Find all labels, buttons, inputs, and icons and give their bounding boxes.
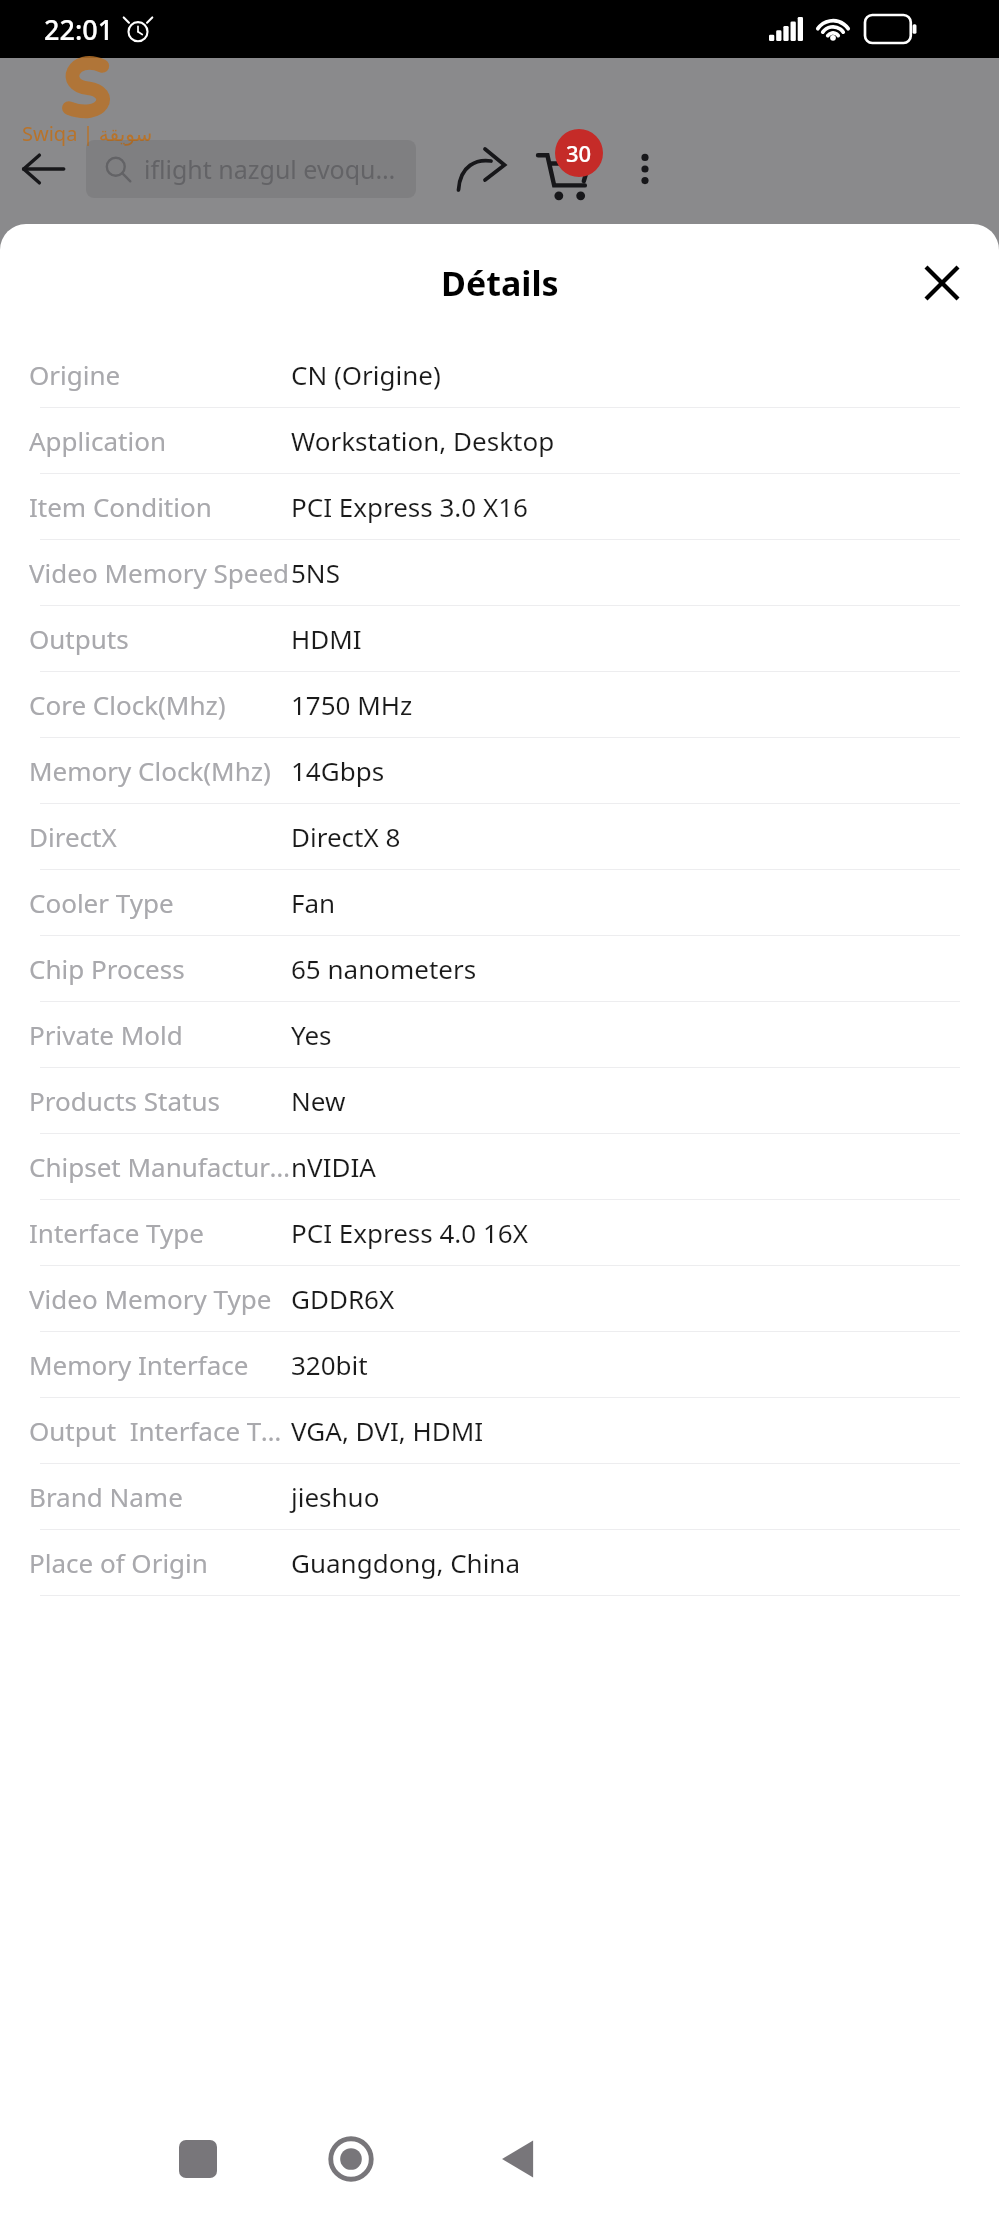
staticText: iflight nazgul evoque f5 v2… [144, 152, 398, 186]
staticText: Brand Name [29, 1479, 183, 1514]
button[interactable]: Close [907, 248, 977, 318]
staticText: 22:01 [44, 11, 114, 48]
staticText: Private Mold [29, 1017, 183, 1052]
staticText: Fan [291, 885, 336, 920]
button[interactable]: Cart [520, 126, 606, 212]
staticText: Interface Type [29, 1215, 204, 1250]
button[interactable]: Core Clock(Mhz) [0, 672, 999, 737]
staticText: nVIDIA [291, 1149, 376, 1184]
button[interactable]: Interface Type [0, 1200, 999, 1265]
button[interactable]: Private Mold [0, 1002, 999, 1067]
staticText: 5NS [291, 555, 340, 590]
staticText: Application [29, 423, 166, 458]
button[interactable]: DirectX [0, 804, 999, 869]
staticText: DirectX [29, 819, 117, 854]
staticText: 14Gbps [291, 753, 385, 788]
button[interactable]: Place of Origin [0, 1530, 999, 1595]
staticText: Video Memory Speed [29, 555, 290, 590]
staticText: 65 nanometers [291, 951, 477, 986]
staticText: PCI Express 4.0 16X [291, 1215, 528, 1250]
button[interactable]: Back [462, 2103, 574, 2215]
staticText: Outputs [29, 621, 129, 656]
staticText: 30 [566, 138, 592, 168]
button[interactable]: Application [0, 408, 999, 473]
staticText: Origine [29, 357, 121, 392]
staticText: Swiqa | سويقة [22, 120, 153, 147]
staticText: Guangdong, China [291, 1545, 521, 1580]
staticText: Core Clock(Mhz) [29, 687, 226, 722]
staticText: PCI Express 3.0 X16 [291, 489, 528, 524]
staticText: Workstation, Desktop [291, 423, 555, 458]
button[interactable]: Memory Interface [0, 1332, 999, 1397]
button[interactable]: Share [442, 130, 520, 208]
staticText: 1750 MHz [291, 687, 413, 722]
staticText: Cooler Type [29, 885, 174, 920]
button[interactable]: More options [606, 130, 684, 208]
button[interactable]: Brand Name [0, 1464, 999, 1529]
button[interactable]: Item Condition [0, 474, 999, 539]
staticText: New [291, 1083, 346, 1118]
button[interactable]: Products Status [0, 1068, 999, 1133]
button[interactable]: Home [295, 2103, 407, 2215]
button[interactable]: Output Interface Type [0, 1398, 999, 1463]
staticText: Chip Process [29, 951, 185, 986]
staticText: Products Status [29, 1083, 220, 1118]
staticText: Chipset Manufacturer [29, 1149, 291, 1184]
button[interactable]: Memory Clock(Mhz) [0, 738, 999, 803]
button[interactable]: Video Memory Type [0, 1266, 999, 1331]
staticText: Video Memory Type [29, 1281, 272, 1316]
staticText: Output Interface Type [29, 1413, 291, 1448]
staticText: Place of Origin [29, 1545, 208, 1580]
button[interactable]: iflight nazgul evoque f5 v2… [86, 140, 416, 198]
staticText: Item Condition [29, 489, 212, 524]
staticText: CN (Origine) [291, 357, 441, 392]
staticText: 320bit [291, 1347, 368, 1382]
staticText: HDMI [291, 621, 362, 656]
staticText: GDDR6X [291, 1281, 395, 1316]
staticText: Yes [291, 1017, 332, 1052]
staticText: jieshuo [291, 1479, 380, 1514]
button[interactable]: Chip Process [0, 936, 999, 1001]
button[interactable]: Chipset Manufacturer [0, 1134, 999, 1199]
staticText: VGA, DVI, HDMI [291, 1413, 484, 1448]
staticText: DirectX 8 [291, 819, 401, 854]
staticText: Détails [441, 260, 559, 306]
button[interactable]: Recent apps [142, 2103, 254, 2215]
staticText: Memory Interface [29, 1347, 249, 1382]
button[interactable]: Video Memory Speed [0, 540, 999, 605]
button[interactable]: Outputs [0, 606, 999, 671]
button[interactable]: Cooler Type [0, 870, 999, 935]
button[interactable]: Back [0, 126, 86, 212]
staticText: Memory Clock(Mhz) [29, 753, 271, 788]
button[interactable]: Origine [0, 342, 999, 407]
